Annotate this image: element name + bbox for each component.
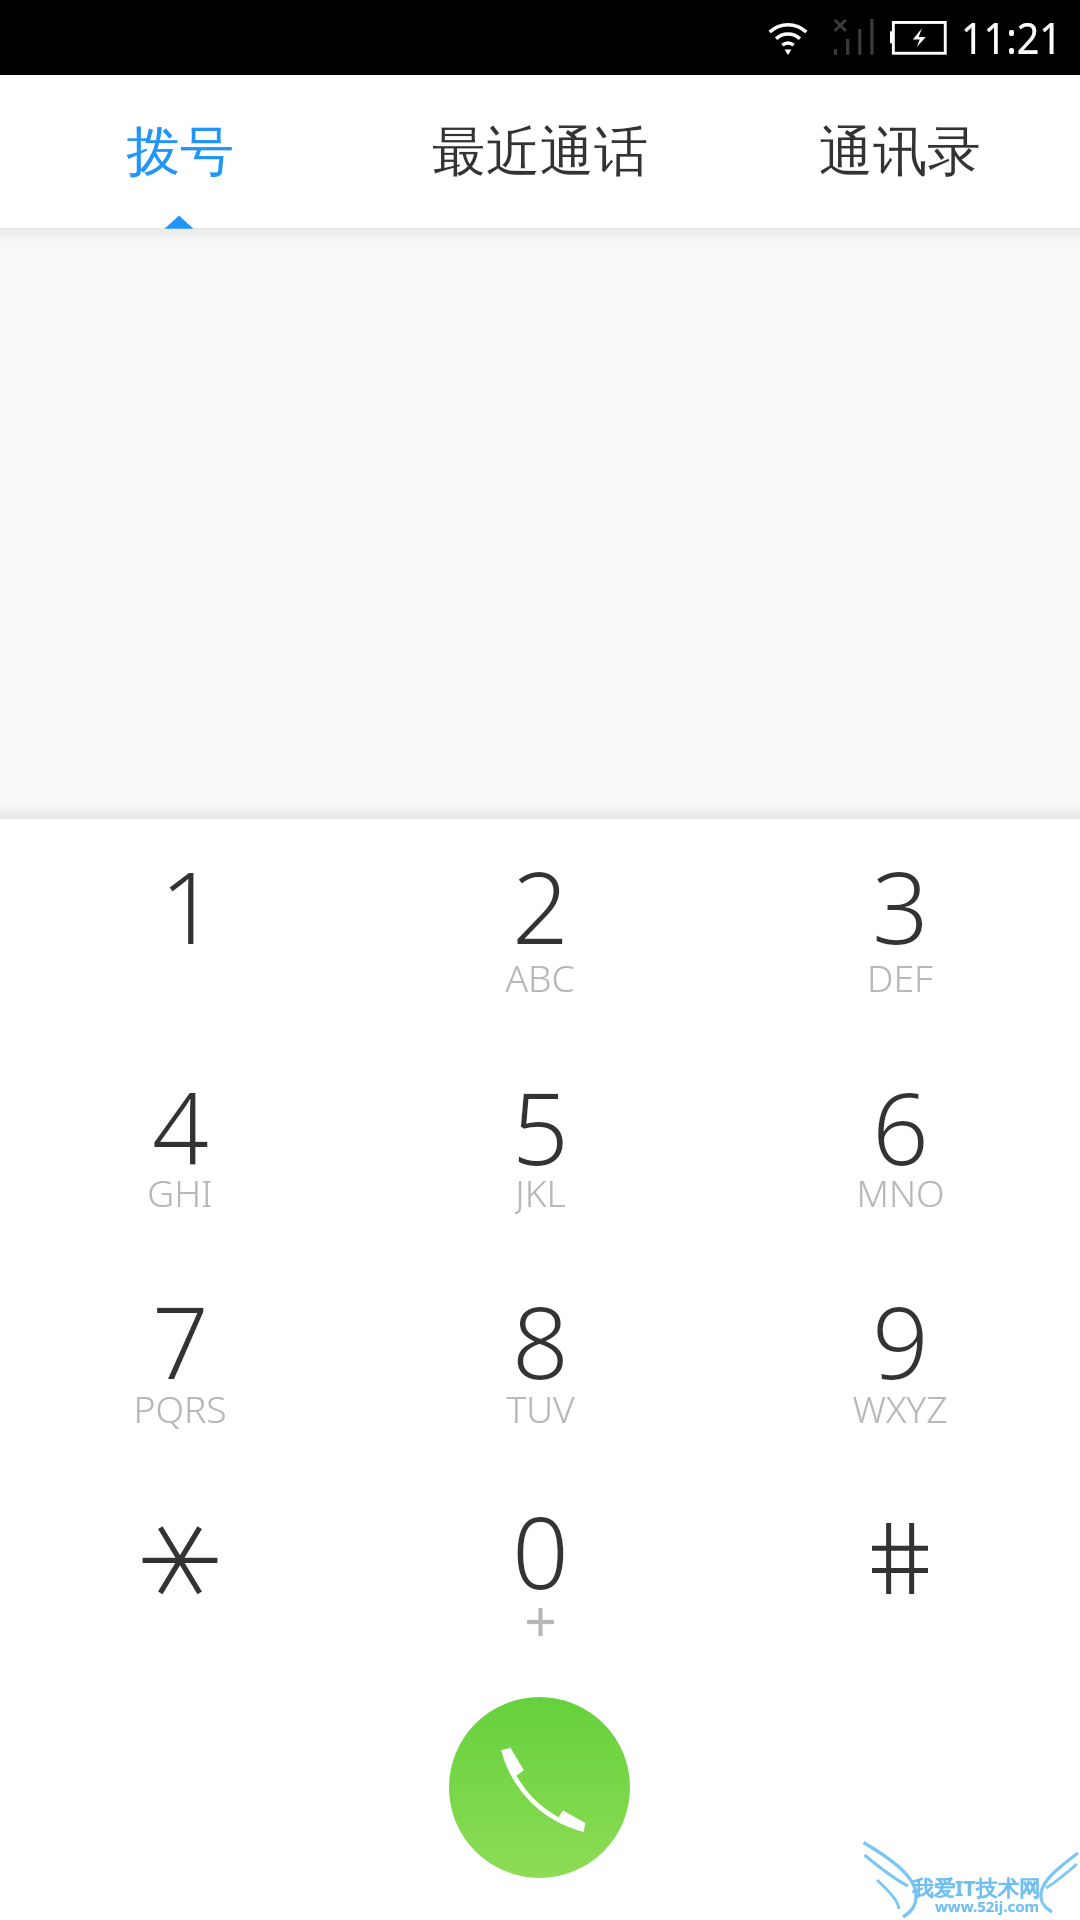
button[interactable]: star [0,1464,360,1679]
staticText: 1 [160,838,217,967]
staticText: TUV [506,1383,575,1431]
button[interactable]: 6 [720,1034,1080,1249]
button[interactable]: 4 [0,1034,360,1249]
button[interactable]: 7 [0,1249,360,1464]
staticText: 3 [872,838,929,967]
button[interactable]: pound [720,1464,1080,1679]
button[interactable]: 5 [360,1034,720,1249]
staticText: www.52ij.com [935,1896,1040,1916]
staticText: 8 [512,1273,569,1402]
button[interactable]: 8 [360,1249,720,1464]
button[interactable]: 1 [0,819,360,1034]
button[interactable]: 最近通话 [360,75,720,228]
staticText: WXYZ [852,1383,948,1431]
staticText: ABC [505,952,575,1000]
button[interactable]: 拨号 [0,75,360,228]
button[interactable]: 0 [360,1464,720,1679]
staticText: 最近通话 [432,118,648,186]
staticText: 通讯录 [819,118,981,186]
staticText: 7 [152,1273,209,1402]
button[interactable]: 9 [720,1249,1080,1464]
staticText: 6 [872,1059,929,1188]
button[interactable]: 3 [720,819,1080,1034]
staticText: 拨号 [126,118,234,186]
staticText: 9 [872,1273,929,1402]
staticText: 2 [512,838,569,967]
staticText: 4 [152,1059,209,1188]
button[interactable]: 2 [360,819,720,1034]
staticText: DEF [867,952,933,1000]
staticText: JKL [515,1167,566,1215]
button[interactable]: Call [449,1697,630,1878]
staticText: 11:21 [961,8,1062,67]
staticText: MNO [856,1167,945,1215]
staticText: 我爱IT技术网 [912,1873,1041,1902]
staticText: 5 [512,1059,569,1188]
staticText: GHI [147,1167,213,1215]
staticText: 0 [512,1483,569,1612]
button[interactable]: 通讯录 [720,75,1080,228]
staticText: PQRS [133,1383,227,1431]
